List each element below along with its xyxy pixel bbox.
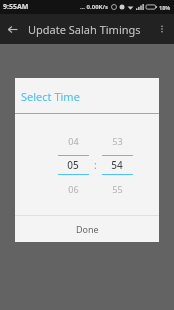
staticText: 55 — [112, 183, 123, 195]
staticText: 53 — [112, 135, 123, 147]
staticText: 54 — [111, 158, 123, 172]
staticText: : — [94, 158, 97, 172]
staticText: 06 — [68, 183, 79, 195]
button[interactable]: 04 — [57, 133, 89, 149]
staticText: 18% — [159, 4, 171, 11]
button[interactable]: 05 — [57, 156, 89, 174]
staticText: ... 0.00K/s — [80, 3, 109, 11]
staticText: 9:55AM — [3, 2, 29, 12]
staticText: 05 — [67, 158, 79, 172]
button[interactable]: 55 — [101, 181, 133, 197]
button[interactable]: 54 — [101, 156, 133, 174]
button[interactable]: Done — [15, 216, 159, 242]
staticText: Done — [76, 223, 99, 235]
button[interactable]: More options — [150, 17, 174, 41]
staticText: 04 — [68, 135, 79, 147]
staticText: Update Salah Timings — [28, 22, 150, 37]
staticText: Select Time — [21, 89, 80, 104]
button[interactable]: 53 — [101, 133, 133, 149]
button[interactable]: 06 — [57, 181, 89, 197]
button[interactable]: Back — [0, 17, 24, 41]
